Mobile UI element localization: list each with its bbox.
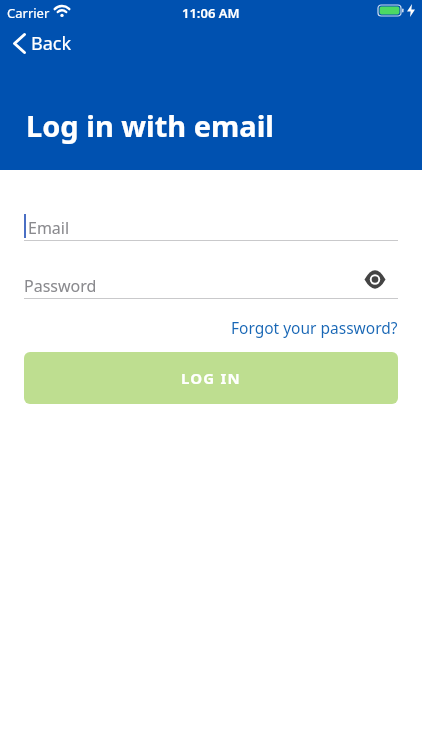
staticText: Password — [24, 275, 97, 297]
button[interactable]: Back — [13, 31, 72, 56]
button[interactable]: Email — [24, 214, 398, 241]
button[interactable]: Password — [24, 272, 398, 299]
staticText: Back — [31, 31, 72, 56]
staticText: Email — [28, 217, 70, 239]
staticText: Carrier — [7, 4, 50, 22]
button[interactable] — [365, 272, 385, 287]
staticText: LOG IN — [181, 368, 241, 388]
staticText: 11:06 AM — [182, 4, 240, 22]
staticText: Log in with email — [26, 106, 275, 145]
button[interactable]: LOG IN — [24, 352, 398, 404]
button[interactable]: Forgot your password? — [231, 317, 398, 338]
